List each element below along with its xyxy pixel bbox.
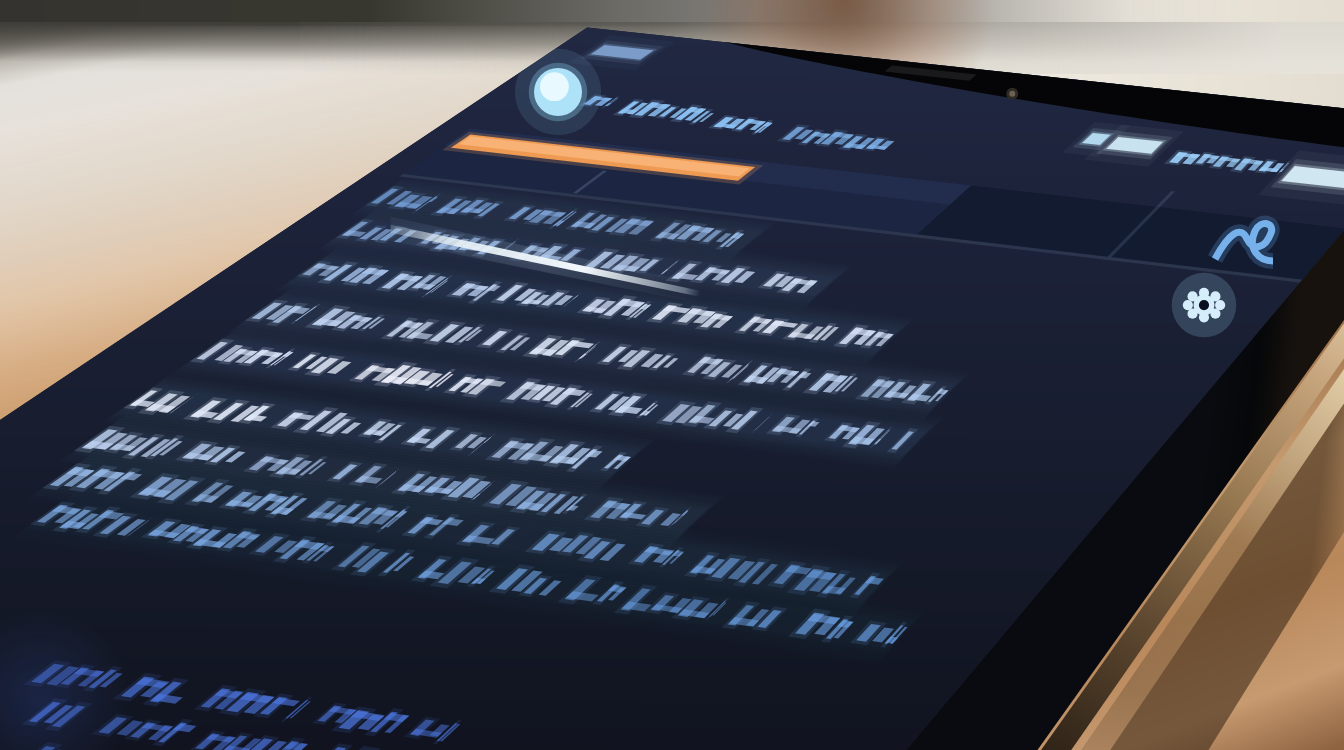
button[interactable]: Older message <box>0 560 900 680</box>
button[interactable]: Sync status <box>1040 110 1340 200</box>
button[interactable]: Profile avatar <box>505 52 625 132</box>
button[interactable]: Message from sender <box>140 180 1040 300</box>
button[interactable]: Storage progress <box>420 112 890 207</box>
button[interactable]: Settings <box>1145 265 1275 355</box>
button[interactable]: Account name <box>575 30 905 92</box>
button[interactable]: Draft message <box>0 650 620 750</box>
button[interactable]: Message thread <box>0 430 980 560</box>
button[interactable]: Compose <box>1180 205 1310 295</box>
button[interactable]: Message body <box>60 300 1020 430</box>
